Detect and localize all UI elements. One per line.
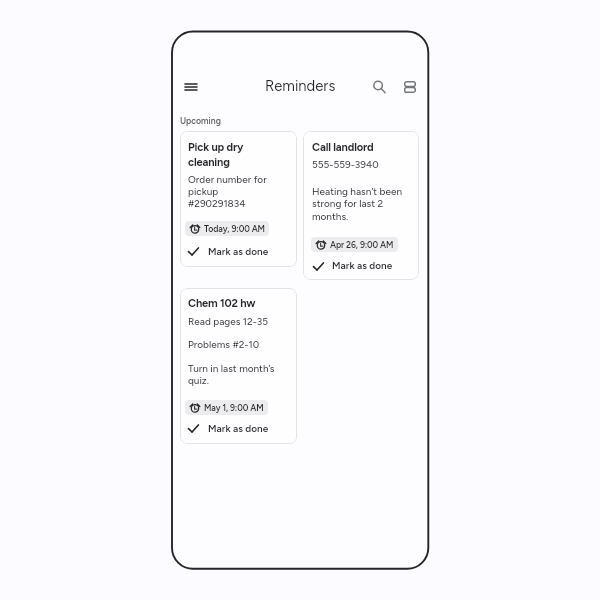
staticText: Mark as done xyxy=(208,246,269,258)
button[interactable] xyxy=(180,131,297,267)
staticText: Apr 26, 9:00 AM xyxy=(330,240,394,250)
staticText: 555-559-3940 xyxy=(312,159,379,171)
staticText: months. xyxy=(312,211,349,223)
staticText: Pick up dry xyxy=(188,141,244,154)
staticText: Problems #2-10 xyxy=(188,339,260,351)
staticText: pickup xyxy=(188,186,219,198)
button[interactable]: Apr 26, 9:00 AM xyxy=(311,237,398,252)
button[interactable]: Open navigation menu xyxy=(180,76,202,98)
staticText: Mark as done xyxy=(332,260,393,272)
staticText: Mark as done xyxy=(208,423,269,435)
staticText: Chem 102 hw xyxy=(188,297,256,310)
button[interactable] xyxy=(186,421,272,436)
staticText: May 1, 9:00 AM xyxy=(204,403,264,413)
staticText: #290291834 xyxy=(188,198,246,210)
staticText: Read pages 12-35 xyxy=(188,316,269,328)
staticText: Upcoming xyxy=(180,116,221,126)
staticText: quiz. xyxy=(188,375,209,387)
button[interactable]: Today, 9:00 AM xyxy=(185,221,269,236)
staticText: Heating hasn’t been xyxy=(312,186,403,198)
button[interactable] xyxy=(186,244,272,259)
button[interactable] xyxy=(180,288,297,444)
button[interactable]: Change view layout xyxy=(399,76,421,98)
button[interactable] xyxy=(311,258,397,273)
staticText: cleaning xyxy=(188,156,230,169)
staticText: strong for last 2 xyxy=(312,198,384,210)
button[interactable]: May 1, 9:00 AM xyxy=(185,400,268,415)
staticText: Today, 9:00 AM xyxy=(204,224,265,234)
staticText: Call landlord xyxy=(312,141,374,154)
staticText: Reminders xyxy=(265,77,336,94)
button[interactable]: Search xyxy=(368,76,390,98)
staticText: Turn in last month’s xyxy=(188,363,275,375)
button[interactable] xyxy=(303,131,419,280)
staticText: Order number for xyxy=(188,174,267,186)
